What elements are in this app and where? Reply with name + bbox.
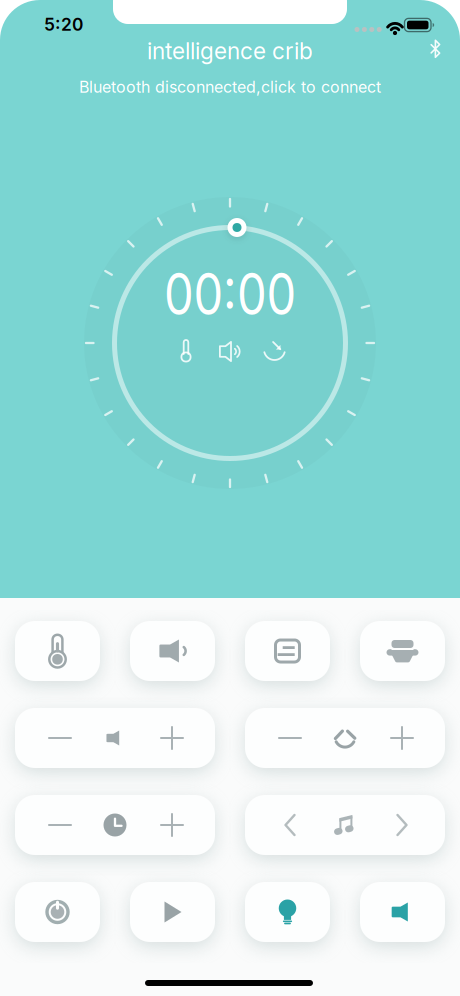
button[interactable]: Bluetooth [427,39,443,59]
button[interactable]: Temperature [15,621,100,681]
button[interactable]: Music [245,795,445,855]
button[interactable]: Connect Bluetooth [79,78,381,96]
button[interactable]: Power [15,882,100,942]
staticText: 5:20 [44,14,83,35]
button[interactable]: Swing [245,708,445,768]
staticText: Bluetooth disconnected,click to connect [79,78,381,96]
button[interactable]: Mosquito repellent [245,621,330,681]
button[interactable]: Speaker [130,621,215,681]
button[interactable]: Timer [15,795,215,855]
staticText: intelligence crib [147,38,313,64]
button[interactable]: Play [130,882,215,942]
button[interactable]: Light [245,882,330,942]
staticText: 00:00 [149,260,310,328]
button[interactable]: Basket [360,621,445,681]
button[interactable]: Sound [360,882,445,942]
button[interactable]: Volume [15,708,215,768]
